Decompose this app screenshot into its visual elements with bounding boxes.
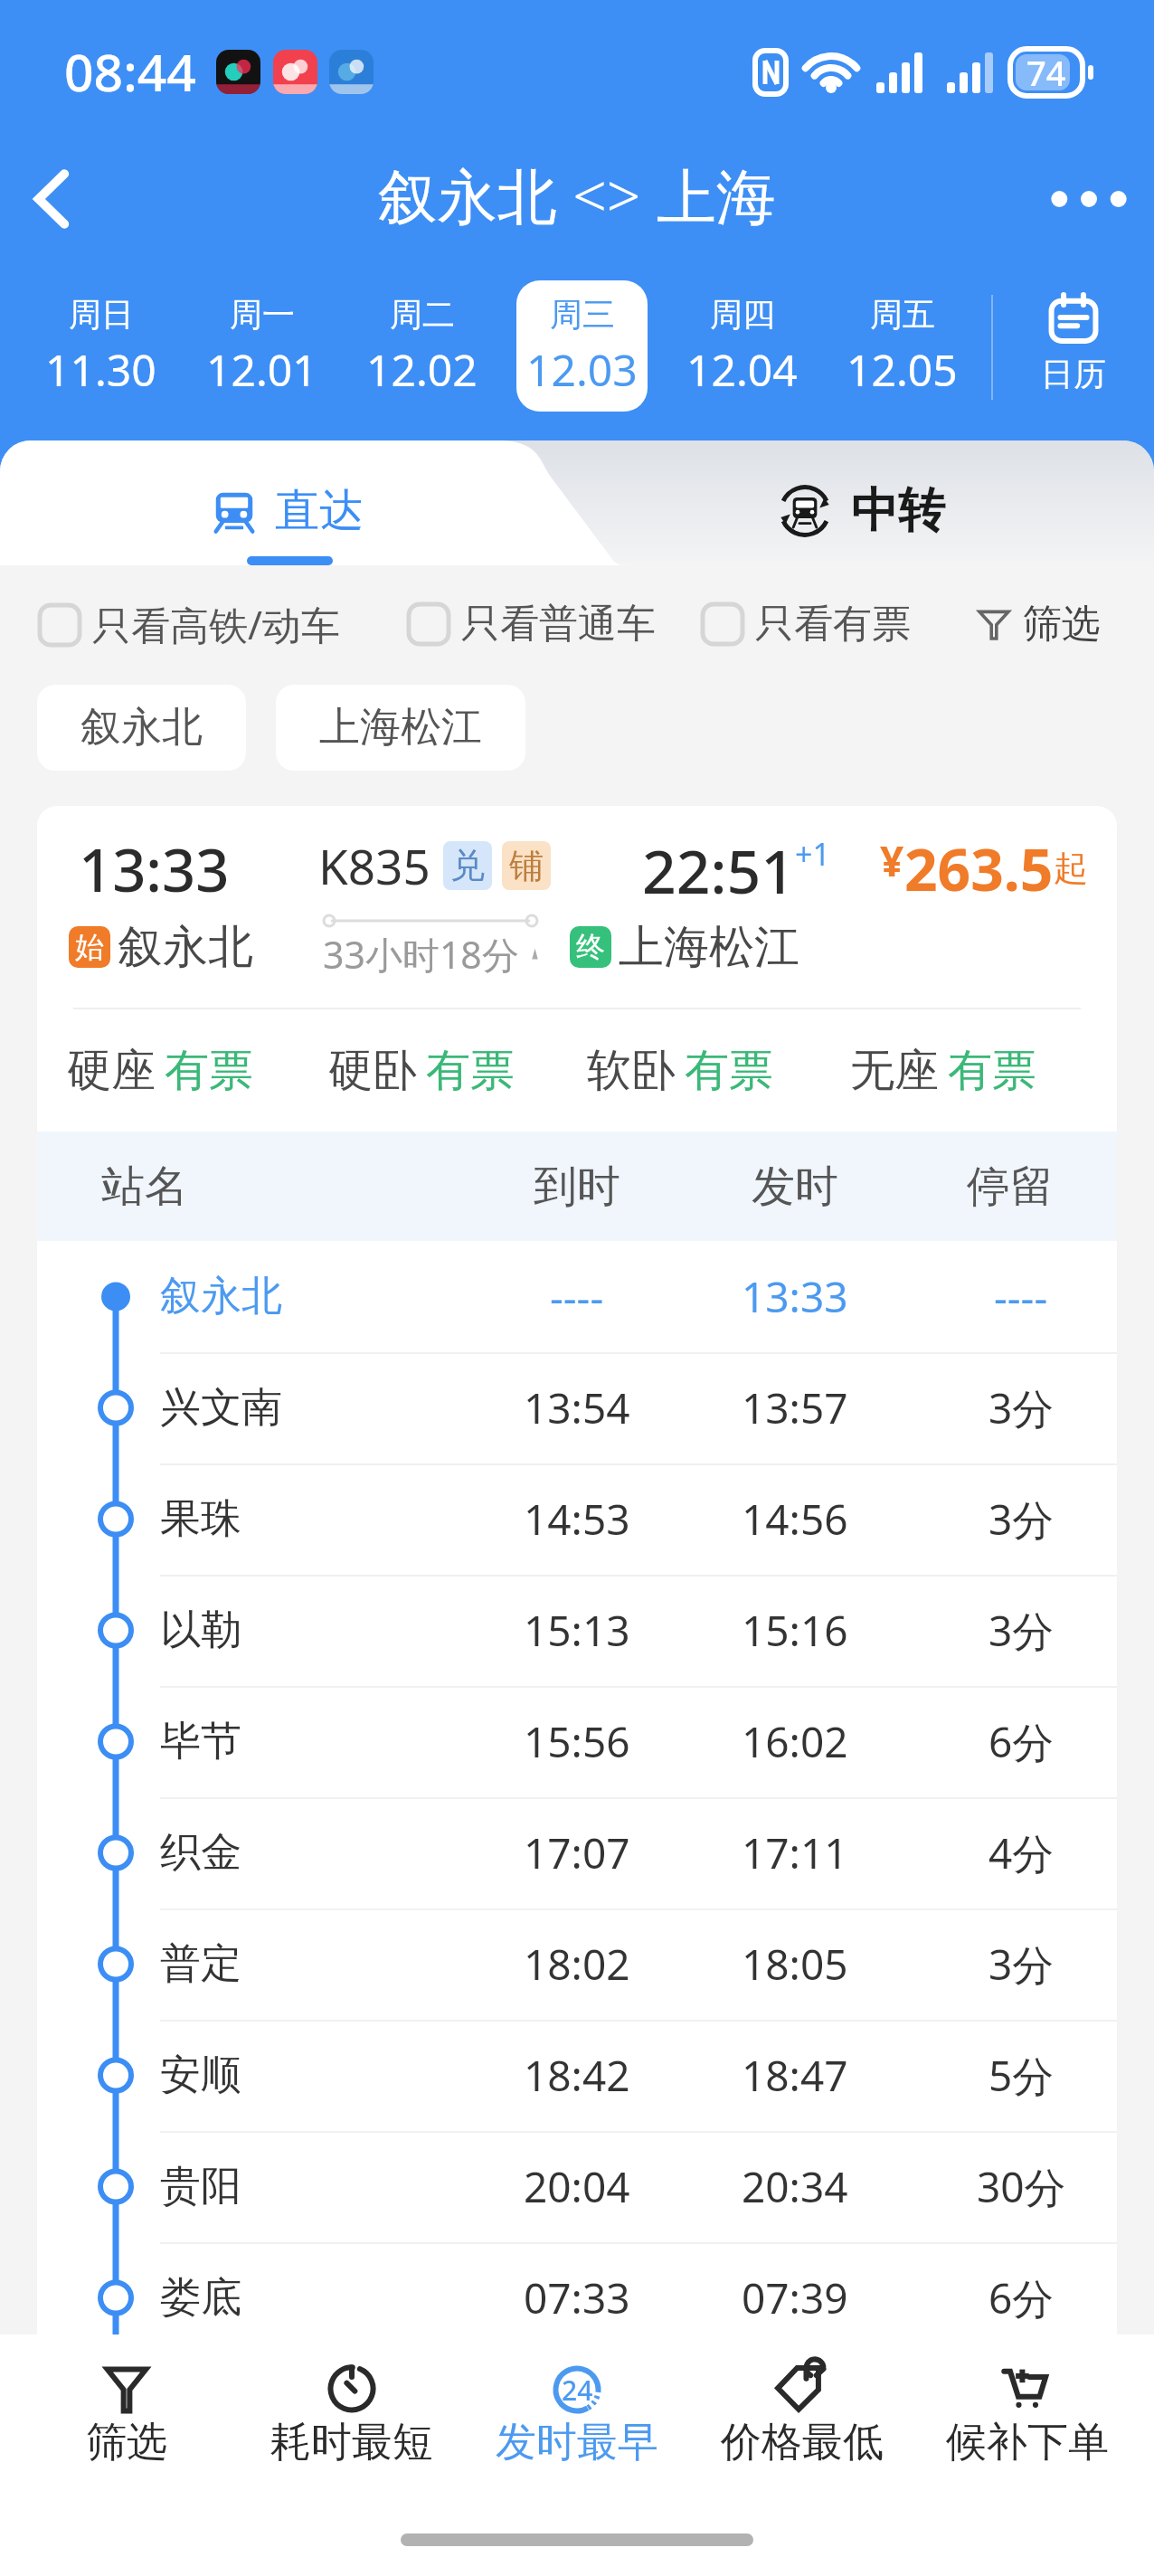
button[interactable]: More options	[1044, 154, 1134, 244]
staticText: 有票	[426, 1043, 515, 1099]
staticText: 6分	[988, 1713, 1055, 1770]
button[interactable]: 只看普通车	[409, 600, 656, 649]
staticText: 有票	[685, 1043, 773, 1099]
staticText: 硬卧	[328, 1043, 417, 1099]
staticText: 3分	[988, 1379, 1055, 1436]
staticText: 安顺	[160, 2050, 241, 2101]
button[interactable]: 24	[464, 2334, 689, 2504]
staticText: 11.30	[45, 340, 156, 399]
staticText: 始	[75, 929, 104, 965]
staticText: 只看高铁/动车	[92, 598, 340, 651]
staticText: 13:33	[79, 829, 230, 902]
staticText: 周二	[390, 294, 455, 335]
button[interactable]: 日历	[993, 295, 1154, 394]
staticText: 价格最低	[721, 2417, 884, 2468]
staticText: 08:44	[64, 36, 196, 107]
staticText: 74	[1026, 49, 1066, 96]
staticText: 12.03	[526, 340, 638, 399]
staticText: 到时	[534, 1160, 620, 1214]
staticText: 周日	[69, 294, 134, 335]
staticText: 12.01	[206, 340, 317, 399]
staticText: 只看有票	[755, 600, 911, 649]
button[interactable]: 上海松江	[276, 685, 525, 771]
staticText: 筛选	[1023, 600, 1101, 649]
staticText: 07:33	[524, 2269, 630, 2326]
button[interactable]: 筛选	[14, 2334, 239, 2504]
button[interactable]: 价格最低	[689, 2334, 914, 2504]
staticText: 叙永北	[160, 1271, 282, 1322]
staticText: 4分	[988, 1824, 1055, 1881]
staticText: 周三	[550, 294, 615, 335]
staticText: 17:11	[742, 1824, 848, 1881]
staticText: 发时	[752, 1160, 838, 1214]
staticText: 12.04	[686, 340, 798, 399]
staticText: K835	[318, 833, 430, 898]
staticText: 候补下单	[946, 2417, 1109, 2468]
staticText: 6分	[988, 2269, 1055, 2326]
staticText: 日历	[1041, 354, 1106, 394]
staticText: 兴文南	[160, 1382, 282, 1434]
staticText: 18:02	[524, 1936, 630, 1993]
staticText: 13:54	[524, 1379, 630, 1436]
staticText: 筛选	[86, 2417, 167, 2468]
staticText: 毕节	[160, 1716, 241, 1767]
staticText: 无座	[850, 1043, 939, 1099]
staticText: 12.05	[847, 340, 958, 399]
button[interactable]: 叙永北	[37, 685, 246, 771]
staticText: ----	[550, 1268, 604, 1325]
staticText: 站名	[101, 1160, 188, 1214]
staticText: 周一	[230, 294, 295, 335]
staticText: 17:07	[524, 1824, 630, 1881]
button[interactable]: 中转	[579, 440, 945, 565]
staticText: 只看普通车	[461, 600, 656, 649]
button[interactable]: 筛选	[976, 600, 1101, 649]
button[interactable]: 周三	[516, 280, 648, 412]
button[interactable]: 周四	[676, 280, 808, 412]
staticText: 22:51	[642, 829, 795, 902]
staticText: 3分	[988, 1936, 1055, 1993]
button[interactable]: 周五	[837, 280, 968, 412]
staticText: 18:42	[524, 2047, 630, 2104]
button[interactable]: 只看高铁/动车	[40, 598, 340, 651]
staticText: 5分	[988, 2047, 1055, 2104]
staticText: 3分	[988, 1491, 1055, 1548]
button[interactable]: 耗时最短	[239, 2334, 464, 2504]
staticText: 14:56	[742, 1491, 848, 1548]
staticText: 15:13	[524, 1602, 630, 1659]
staticText: 周四	[710, 294, 775, 335]
button[interactable]: 周一	[195, 280, 327, 412]
staticText: 叙永北	[80, 702, 203, 753]
staticText: 13:33	[742, 1268, 848, 1325]
staticText: 起	[1054, 847, 1088, 890]
staticText: 有票	[948, 1043, 1036, 1099]
staticText: 上海松江	[319, 702, 482, 753]
staticText: 铺	[509, 844, 544, 887]
staticText: 周五	[870, 294, 935, 335]
staticText: ¥	[880, 832, 904, 889]
button[interactable]: 周二	[356, 280, 487, 412]
button[interactable]: 候补下单	[914, 2334, 1140, 2504]
button[interactable]: 周日	[34, 280, 166, 412]
staticText: 15:16	[742, 1602, 848, 1659]
staticText: 贵阳	[160, 2161, 241, 2212]
staticText: 20:04	[524, 2158, 630, 2215]
staticText: ----	[994, 1268, 1048, 1325]
staticText: 普定	[160, 1938, 241, 1990]
staticText: 3分	[988, 1602, 1055, 1659]
staticText: 18:47	[742, 2047, 848, 2104]
staticText: 停留	[967, 1160, 1054, 1214]
staticText: 直达	[275, 483, 364, 539]
staticText: 20:34	[742, 2158, 848, 2215]
staticText: 33小时18分	[323, 929, 519, 980]
staticText: 硬座	[67, 1043, 156, 1099]
button[interactable]: Back	[7, 154, 98, 244]
staticText: +1	[795, 833, 830, 875]
staticText: 上海松江	[619, 919, 799, 976]
button[interactable]: 直达	[0, 440, 579, 565]
staticText: 软卧	[587, 1043, 676, 1099]
button[interactable]: 只看有票	[703, 600, 911, 649]
staticText: 发时最早	[496, 2417, 658, 2468]
staticText: 30分	[977, 2158, 1066, 2215]
staticText: 13:57	[742, 1379, 848, 1436]
staticText: 终	[576, 929, 605, 965]
